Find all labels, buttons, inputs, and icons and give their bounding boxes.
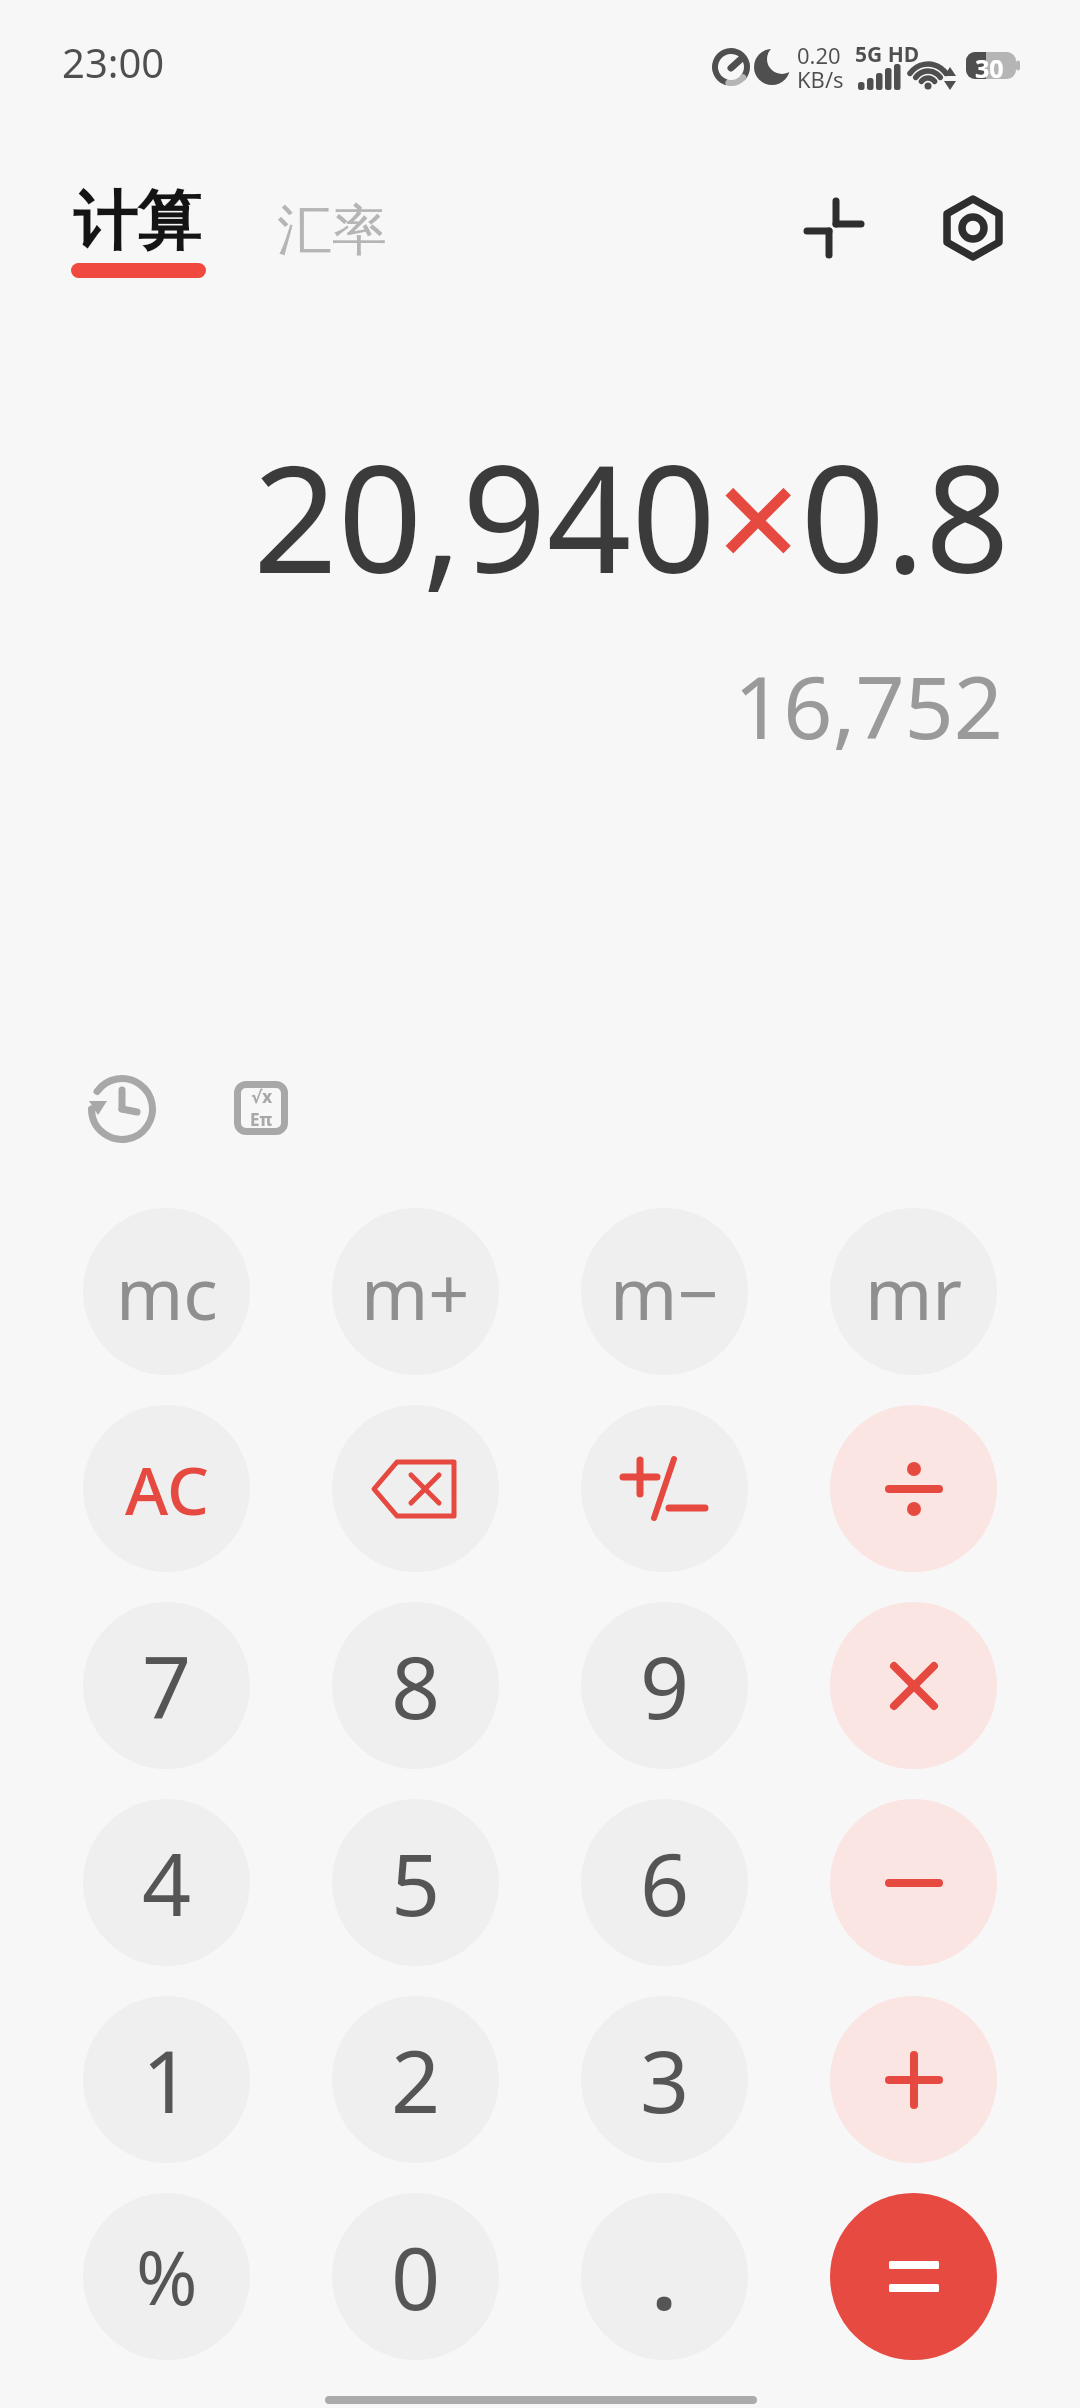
staticText: . bbox=[652, 2218, 677, 2335]
staticText: 30 bbox=[975, 51, 1004, 85]
staticText: mc bbox=[116, 1243, 218, 1341]
staticText: 5G HD bbox=[855, 40, 920, 69]
button[interactable] bbox=[88, 1075, 156, 1143]
button[interactable]: 0 bbox=[332, 2193, 499, 2360]
button[interactable]: AC bbox=[83, 1405, 250, 1572]
button[interactable] bbox=[830, 1405, 997, 1572]
button[interactable]: m+ bbox=[332, 1208, 499, 1375]
button[interactable] bbox=[830, 2193, 997, 2360]
staticText: 计算 bbox=[73, 181, 201, 262]
button[interactable]: √x bbox=[234, 1081, 288, 1135]
button[interactable]: 1 bbox=[83, 1996, 250, 2163]
button[interactable]: 6 bbox=[581, 1799, 748, 1966]
button[interactable]: 3 bbox=[581, 1996, 748, 2163]
button[interactable]: m− bbox=[581, 1208, 748, 1375]
staticText: 0.20 KB/s bbox=[797, 40, 844, 94]
button[interactable]: mc bbox=[83, 1208, 250, 1375]
staticText: 16,752 bbox=[734, 647, 1004, 764]
button[interactable]: 5 bbox=[332, 1799, 499, 1966]
staticText: 8 bbox=[391, 1627, 441, 1744]
button[interactable]: 计算 bbox=[73, 181, 201, 262]
staticText: 3 bbox=[640, 2021, 690, 2138]
staticText: √x bbox=[251, 1085, 273, 1108]
staticText: 汇率 bbox=[277, 196, 387, 265]
button[interactable]: 7 bbox=[83, 1602, 250, 1769]
button[interactable] bbox=[830, 1799, 997, 1966]
staticText: 9 bbox=[640, 1627, 690, 1744]
staticText: m+ bbox=[361, 1243, 470, 1341]
staticText: 2 bbox=[391, 2021, 441, 2138]
button[interactable]: . bbox=[581, 2193, 748, 2360]
staticText: 23:00 bbox=[62, 35, 165, 89]
button[interactable]: 8 bbox=[332, 1602, 499, 1769]
button[interactable] bbox=[944, 197, 1002, 259]
staticText: m− bbox=[610, 1243, 719, 1341]
staticText: 1 bbox=[142, 2021, 192, 2138]
staticText: AC bbox=[125, 1444, 209, 1534]
button[interactable] bbox=[806, 200, 862, 256]
staticText: Eπ bbox=[250, 1108, 273, 1131]
staticText: 7 bbox=[142, 1627, 192, 1744]
staticText: 6 bbox=[640, 1824, 690, 1941]
staticText: % bbox=[136, 2226, 198, 2327]
button[interactable] bbox=[830, 1996, 997, 2163]
button[interactable]: 2 bbox=[332, 1996, 499, 2163]
staticText: 4 bbox=[142, 1824, 192, 1941]
staticText: 20,940×0.8 bbox=[253, 415, 1010, 617]
button[interactable] bbox=[332, 1405, 499, 1572]
button[interactable]: % bbox=[83, 2193, 250, 2360]
staticText: 0 bbox=[391, 2218, 441, 2335]
button[interactable] bbox=[581, 1405, 748, 1572]
button[interactable]: mr bbox=[830, 1208, 997, 1375]
button[interactable]: 9 bbox=[581, 1602, 748, 1769]
staticText: mr bbox=[865, 1243, 963, 1341]
button[interactable] bbox=[830, 1602, 997, 1769]
staticText: 5 bbox=[391, 1824, 441, 1941]
button[interactable]: 4 bbox=[83, 1799, 250, 1966]
button[interactable]: 汇率 bbox=[277, 196, 387, 265]
